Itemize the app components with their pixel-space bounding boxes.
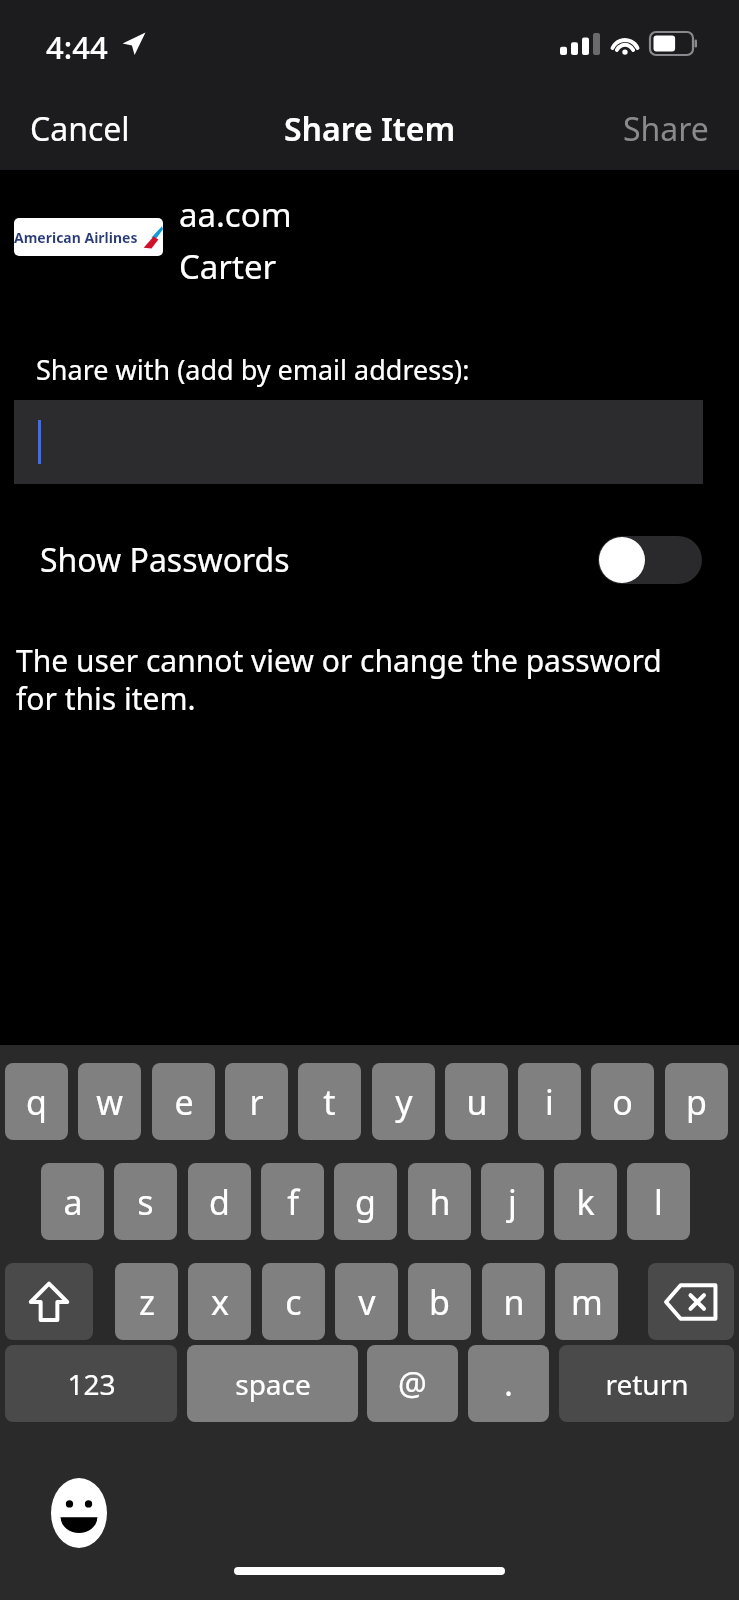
button[interactable]: b [408,1263,471,1340]
staticText: Share [623,107,709,151]
staticText: m [571,1279,603,1325]
staticText: 123 [67,1365,116,1403]
staticText: u [466,1079,488,1125]
button[interactable]: Show Passwords [0,520,739,600]
staticText: American Airlines [14,228,138,247]
button[interactable]: Cancel [0,97,150,161]
staticText: r [249,1079,264,1125]
button[interactable]: l [627,1163,690,1240]
button[interactable]: j [481,1163,544,1240]
button[interactable]: return [559,1345,734,1422]
staticText: f [287,1179,299,1225]
other: Show Passwords toggle, off [598,536,702,584]
button[interactable]: e [152,1063,215,1140]
staticText: i [545,1079,554,1125]
button[interactable]: Shift [5,1263,93,1340]
button[interactable]: u [445,1063,508,1140]
staticText: space [235,1365,311,1403]
button[interactable]: q [5,1063,68,1140]
staticText: x [211,1279,229,1325]
staticText: a [63,1179,83,1225]
staticText: c [285,1279,302,1325]
button[interactable]: o [591,1063,654,1140]
button[interactable]: @ [367,1345,458,1422]
button[interactable]: space [187,1345,358,1422]
button[interactable]: m [555,1263,618,1340]
staticText: Cancel [30,107,130,151]
button[interactable]: t [298,1063,361,1140]
button[interactable]: Emoji keyboard [50,1477,108,1549]
staticText: return [605,1365,689,1403]
button[interactable]: Backspace [648,1263,734,1340]
staticText: q [26,1079,47,1125]
button[interactable]: 123 [5,1345,177,1422]
staticText: Show Passwords [40,538,290,582]
staticText: k [576,1179,595,1225]
staticText: aa.com [179,192,292,237]
staticText: 4:44 [46,26,108,68]
staticText: Share Item [284,107,456,151]
staticText: @ [398,1362,427,1406]
button[interactable]: s [114,1163,177,1240]
button[interactable]: . [468,1345,549,1422]
staticText: z [139,1279,155,1325]
button[interactable]: i [518,1063,581,1140]
staticText: n [503,1279,525,1325]
button[interactable]: Share [603,97,739,161]
staticText: y [395,1079,413,1125]
button[interactable]: y [372,1063,435,1140]
staticText: b [429,1279,450,1325]
staticText: j [508,1179,517,1225]
button[interactable]: g [334,1163,397,1240]
button[interactable]: d [188,1163,251,1240]
button[interactable]: w [78,1063,141,1140]
button[interactable]: v [335,1263,398,1340]
button[interactable]: k [554,1163,617,1240]
button[interactable]: n [482,1263,545,1340]
staticText: l [654,1179,663,1225]
button[interactable] [14,400,703,484]
staticText: g [355,1179,376,1225]
staticText: o [612,1079,633,1125]
button[interactable]: r [225,1063,288,1140]
staticText: v [358,1279,376,1325]
staticText: e [174,1079,194,1125]
staticText: p [686,1079,707,1125]
staticText: . [504,1362,513,1406]
staticText: d [209,1179,230,1225]
staticText: h [429,1179,451,1225]
button[interactable]: x [188,1263,251,1340]
button[interactable]: c [262,1263,325,1340]
staticText: w [96,1079,123,1125]
staticText: t [323,1079,336,1125]
button[interactable]: h [408,1163,471,1240]
button[interactable]: z [115,1263,178,1340]
staticText: Share with (add by email address): [36,351,470,388]
staticText: s [137,1179,154,1225]
staticText: Carter [179,244,277,289]
button[interactable]: a [41,1163,104,1240]
button[interactable]: p [665,1063,728,1140]
staticText: The user cannot view or change the passw… [16,640,666,719]
button[interactable]: f [261,1163,324,1240]
